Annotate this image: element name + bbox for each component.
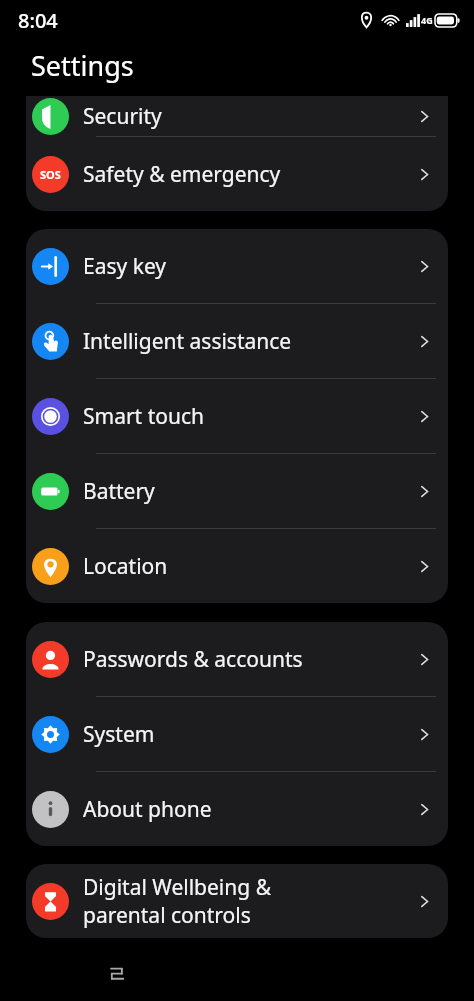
button[interactable]: Recent apps bbox=[101, 955, 137, 991]
button[interactable]: System bbox=[26, 697, 448, 771]
staticText: Digital Wellbeing & parental controls bbox=[83, 873, 415, 929]
staticText: Battery bbox=[83, 477, 415, 506]
staticText: Intelligent assistance bbox=[83, 327, 415, 356]
staticText: Location bbox=[83, 552, 415, 581]
button[interactable]: Easy key bbox=[26, 229, 448, 303]
staticText: Settings bbox=[31, 47, 134, 84]
staticText: Smart touch bbox=[83, 402, 415, 431]
button[interactable]: Battery bbox=[26, 454, 448, 528]
staticText: SOS bbox=[40, 167, 61, 182]
staticText: System bbox=[83, 720, 415, 749]
staticText: 4G bbox=[421, 14, 433, 26]
button[interactable]: SOS bbox=[26, 137, 448, 211]
staticText: About phone bbox=[83, 795, 415, 824]
staticText: Safety & emergency bbox=[83, 160, 415, 189]
button[interactable]: Location bbox=[26, 529, 448, 603]
button[interactable]: About phone bbox=[26, 772, 448, 846]
staticText: Easy key bbox=[83, 252, 415, 281]
button[interactable]: Intelligent assistance bbox=[26, 304, 448, 378]
staticText: 8:04 bbox=[18, 7, 58, 34]
staticText: Passwords & accounts bbox=[83, 645, 415, 674]
button[interactable]: Digital Wellbeing & parental controls bbox=[26, 864, 448, 938]
button[interactable]: Security bbox=[26, 96, 448, 136]
button[interactable]: Smart touch bbox=[26, 379, 448, 453]
button[interactable]: Passwords & accounts bbox=[26, 622, 448, 696]
staticText: Security bbox=[83, 102, 415, 131]
